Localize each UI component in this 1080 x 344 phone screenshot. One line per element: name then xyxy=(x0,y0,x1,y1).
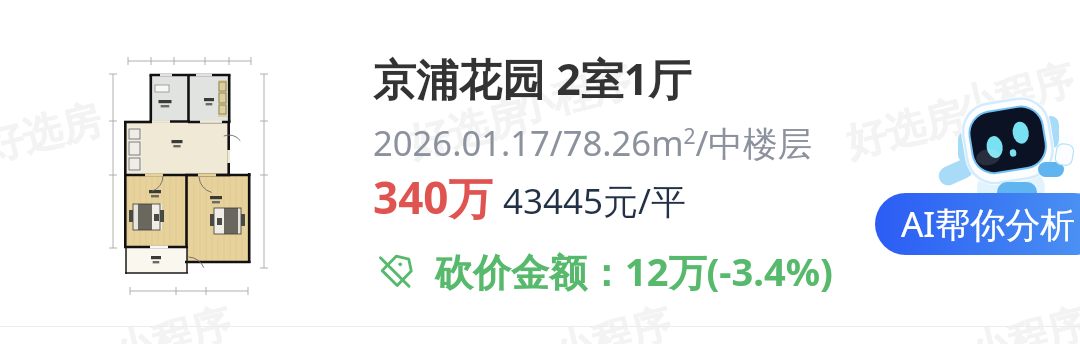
staticText: 小程序 xyxy=(964,298,1080,344)
staticText: 京浦花园 2室1厅 xyxy=(373,49,692,108)
staticText: 好选房 xyxy=(841,90,969,168)
button[interactable]: AI帮你分析 xyxy=(875,193,1080,255)
staticText: 小程序 xyxy=(108,298,236,344)
button[interactable]: Floor plan of 京浦花园 2室1厅 xyxy=(0,0,1080,326)
staticText: 小程序 xyxy=(508,56,636,134)
staticText: 340万 xyxy=(373,167,493,227)
staticText: 好选房 xyxy=(0,94,106,172)
other: AI assistant robot xyxy=(890,55,1080,215)
staticText: AI帮你分析 xyxy=(901,200,1076,248)
staticText: 2026.01.17/78.26m2/中楼层 xyxy=(373,119,813,166)
button[interactable]: Floor plan of 京浦花园 2室1厅 xyxy=(112,42,292,304)
staticText: 小程序 xyxy=(548,298,676,344)
staticText: 好选房 xyxy=(404,90,532,168)
staticText: 小程序 xyxy=(951,54,1079,132)
staticText: 43445元/平 xyxy=(503,177,687,225)
button[interactable]: Discount tag xyxy=(373,245,833,297)
other: Discount tag xyxy=(378,252,416,290)
staticText: 砍价金额：12万(-3.4%) xyxy=(435,245,833,297)
